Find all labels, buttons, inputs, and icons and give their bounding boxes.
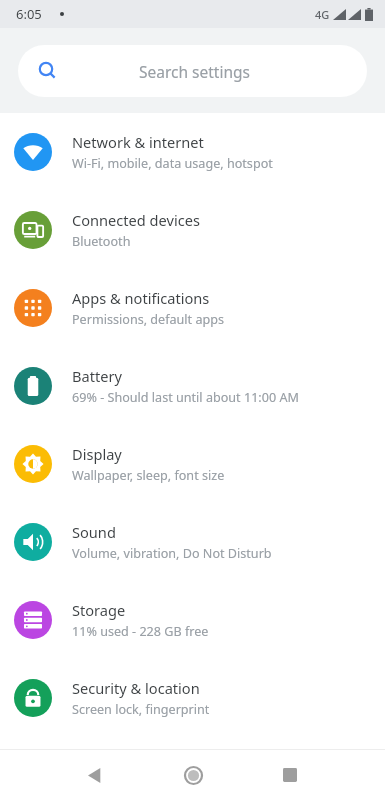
button[interactable]: Apps & notifications (0, 269, 385, 347)
staticText: 6:05 (16, 5, 42, 23)
staticText: Connected devices (72, 210, 200, 230)
button[interactable]: Storage (0, 581, 385, 659)
staticText: Storage (72, 600, 126, 620)
button[interactable]: Security & location (0, 659, 385, 737)
staticText: Search settings (139, 61, 250, 82)
staticText: Volume, vibration, Do Not Disturb (72, 545, 272, 562)
staticText: Sound (72, 522, 116, 542)
button[interactable]: Network & internet (0, 113, 385, 191)
button[interactable]: Battery (0, 347, 385, 425)
staticText: 69% - Should last until about 11:00 AM (72, 389, 299, 406)
staticText: Bluetooth (72, 233, 131, 250)
staticText: Screen lock, fingerprint (72, 701, 210, 718)
staticText: Wi-Fi, mobile, data usage, hotspot (72, 155, 273, 172)
button[interactable]: Sound (0, 503, 385, 581)
staticText: 4G (315, 7, 330, 22)
staticText: Permissions, default apps (72, 311, 225, 328)
button[interactable]: Search settings (18, 45, 367, 97)
button[interactable]: Home (175, 757, 211, 793)
button[interactable]: Back (78, 758, 112, 792)
button[interactable]: Display (0, 425, 385, 503)
staticText: Display (72, 444, 122, 464)
button[interactable]: Recent apps (273, 758, 307, 792)
staticText: 11% used - 228 GB free (72, 623, 209, 640)
staticText: Apps & notifications (72, 288, 210, 308)
staticText: Battery (72, 366, 122, 386)
button[interactable]: Connected devices (0, 191, 385, 269)
staticText: Wallpaper, sleep, font size (72, 467, 225, 484)
staticText: Security & location (72, 678, 200, 698)
staticText: Network & internet (72, 132, 204, 152)
